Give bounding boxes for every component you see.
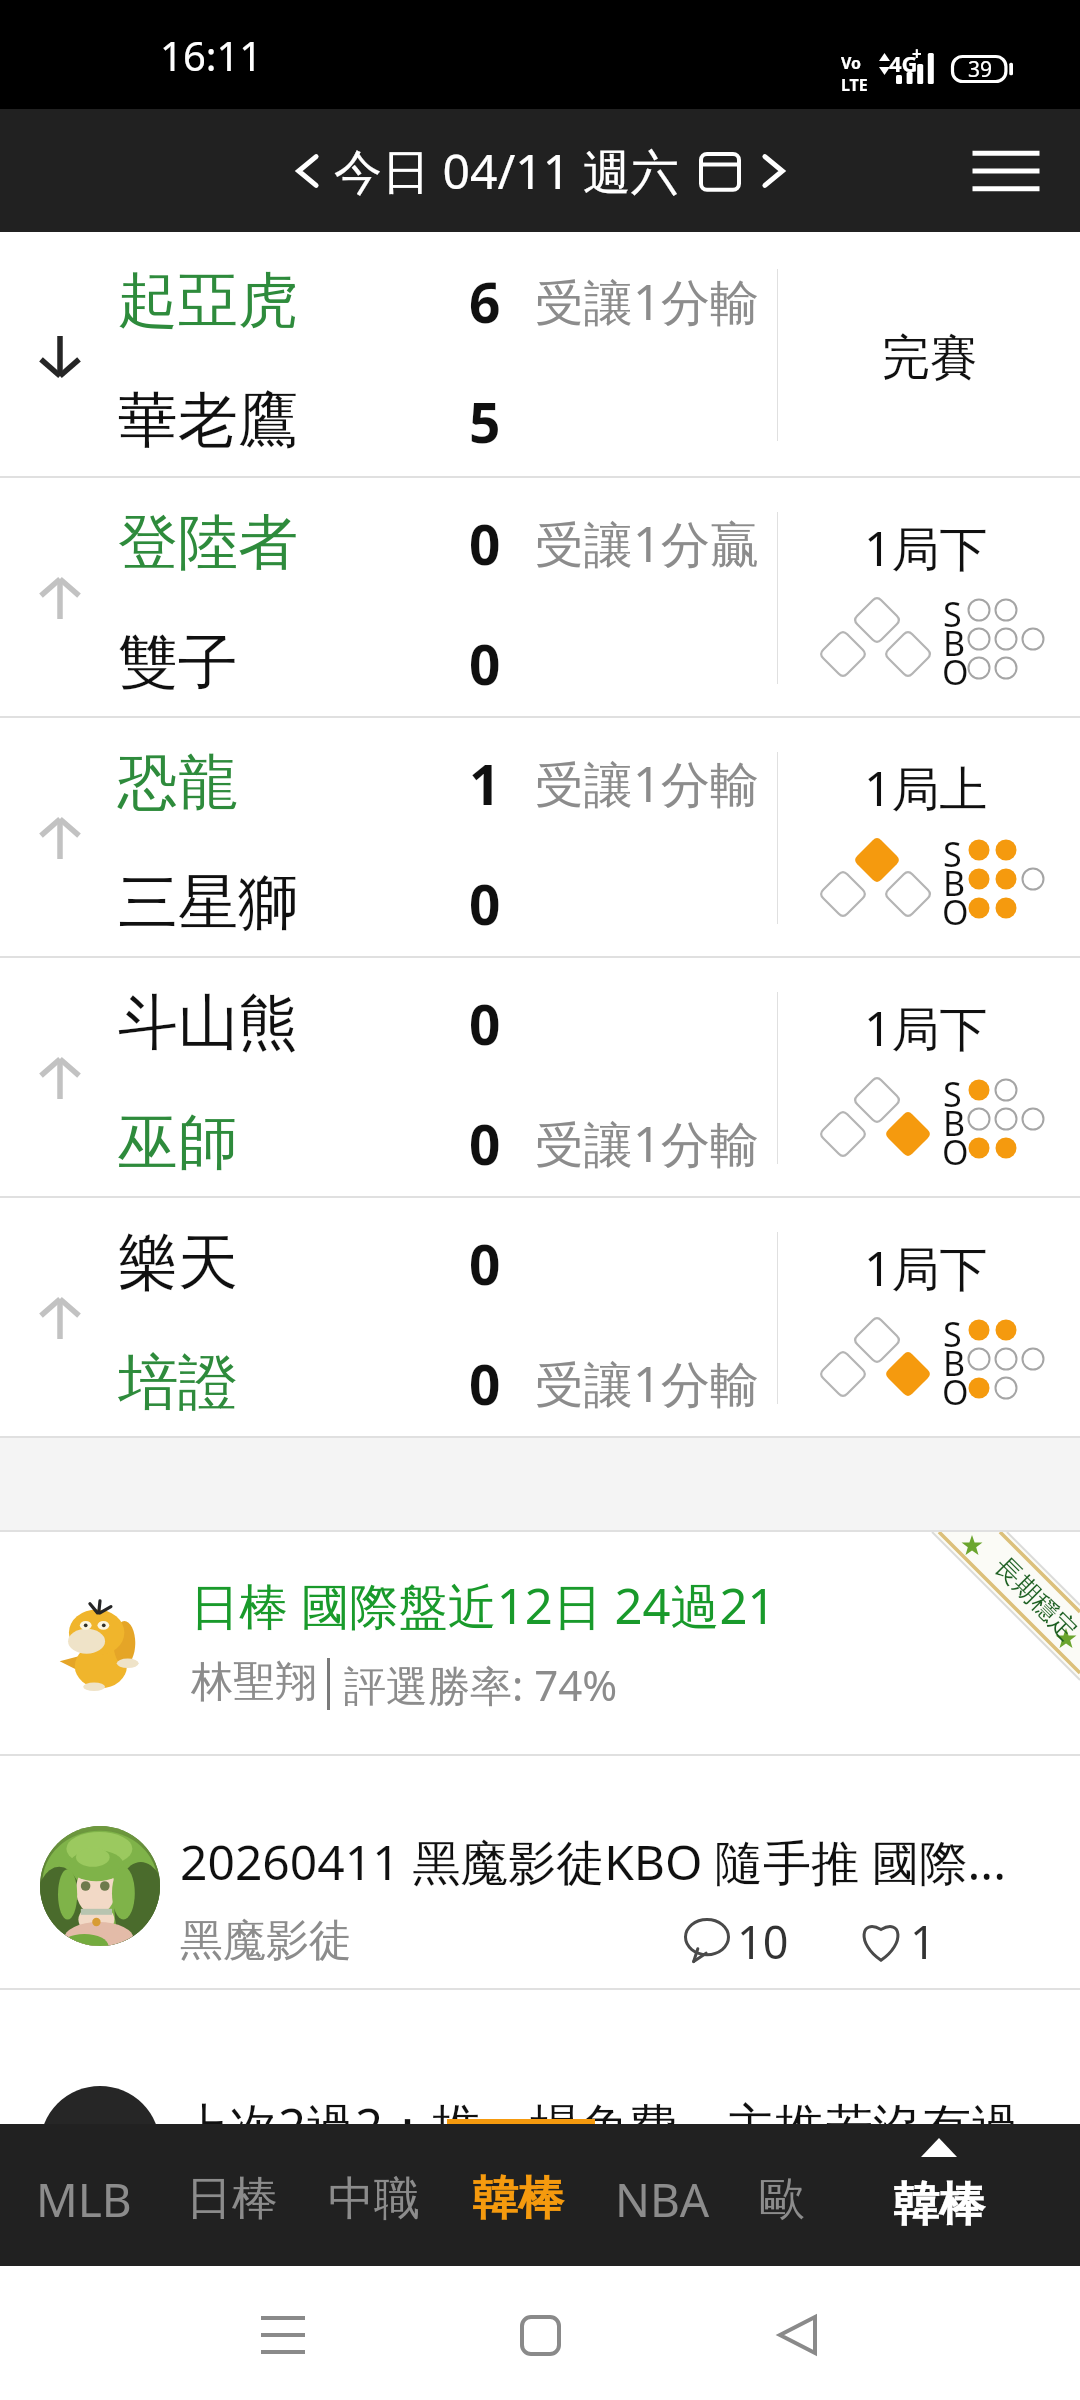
button[interactable]: Home	[493, 2288, 587, 2382]
staticText: 中職	[328, 2170, 420, 2228]
button[interactable]: 恐龍	[0, 718, 1080, 957]
staticText: B	[943, 1100, 966, 1146]
button[interactable]: 20260411 黑魔影徒KBO 隨手推 國際...	[0, 1756, 1080, 1989]
button[interactable]: Menu	[956, 121, 1056, 221]
staticText: 今日 04/11 週六	[334, 138, 679, 204]
staticText: 4G	[889, 48, 918, 78]
staticText: 日棒	[186, 2170, 278, 2228]
staticText: 1	[910, 1911, 936, 1972]
staticText: B	[943, 860, 966, 906]
staticText: 斗山熊	[118, 985, 298, 1061]
staticText: O	[942, 1369, 969, 1415]
staticText: 1	[469, 746, 501, 821]
staticText: B	[943, 620, 966, 666]
staticText: 20260411 黑魔影徒KBO 隨手推 國際...	[180, 1829, 1010, 1895]
staticText: O	[942, 649, 969, 695]
staticText: MLB	[36, 2168, 132, 2231]
button[interactable]: Back	[750, 2288, 844, 2382]
staticText: Vo	[841, 52, 862, 74]
button[interactable]: 今日 04/11 週六	[288, 138, 793, 204]
staticText: S	[943, 831, 962, 877]
staticText: 歐	[759, 2170, 805, 2228]
staticText: 樂天	[118, 1225, 238, 1301]
staticText: 日棒 國際盤近12日 24過21	[190, 1572, 776, 1639]
staticText: 華老鷹	[118, 383, 298, 459]
button[interactable]: 中職	[304, 2124, 444, 2266]
staticText: O	[942, 1129, 969, 1175]
staticText: 登陸者	[118, 505, 298, 581]
button[interactable]: 韓棒	[448, 2124, 588, 2266]
staticText: 林聖翔	[191, 1656, 317, 1709]
staticText: 黑魔影徒	[180, 1914, 352, 1968]
staticText: 10	[737, 1911, 789, 1972]
staticText: 0	[469, 866, 501, 941]
button[interactable]: 樂天	[0, 1198, 1080, 1437]
staticText: 0	[469, 626, 501, 701]
staticText: 恐龍	[118, 745, 238, 821]
staticText: 培證	[118, 1345, 238, 1421]
staticText: S	[943, 591, 962, 637]
staticText: 1局下	[864, 515, 988, 581]
button[interactable]: 日棒	[162, 2124, 302, 2266]
staticText: 5	[469, 384, 501, 459]
staticText: 起亞虎	[118, 263, 298, 339]
button[interactable]: 起亞虎	[0, 232, 1080, 477]
staticText: 0	[469, 986, 501, 1061]
staticText: 評選勝率: 74%	[344, 1656, 618, 1713]
staticText: 0	[469, 506, 501, 581]
staticText: 39	[968, 55, 993, 84]
button[interactable]: 上次2過2：推一場免費，主推若沒有過	[0, 1990, 1080, 2130]
staticText: 受讓1分輸	[535, 1350, 760, 1417]
staticText: 巫師	[118, 1105, 238, 1181]
staticText: O	[942, 889, 969, 935]
staticText: B	[943, 1340, 966, 1386]
button[interactable]: 登陸者	[0, 478, 1080, 717]
staticText: S	[943, 1071, 962, 1117]
staticText: 長期穩定	[988, 1550, 1080, 1647]
button[interactable]: 斗山熊	[0, 958, 1080, 1197]
button[interactable]: 韓棒	[858, 2124, 1020, 2266]
button[interactable]: NBA	[592, 2124, 732, 2266]
staticText: 韓棒	[472, 2170, 564, 2228]
staticText: 6	[469, 264, 501, 339]
staticText: 完賽	[882, 328, 978, 388]
staticText: 1局下	[864, 1235, 988, 1301]
staticText: 受讓1分贏	[535, 510, 760, 577]
staticText: 1局上	[864, 755, 988, 821]
staticText: 雙子	[118, 625, 238, 701]
staticText: 受讓1分輸	[535, 1110, 760, 1177]
button[interactable]: 日棒 國際盤近12日 24過21	[0, 1532, 1080, 1755]
button[interactable]: MLB	[14, 2124, 154, 2266]
staticText: 韓棒	[893, 2176, 985, 2234]
staticText: 0	[469, 1106, 501, 1181]
staticText: 16:11	[160, 28, 263, 82]
staticText: 1局下	[864, 995, 988, 1061]
staticText: LTE	[841, 74, 868, 96]
staticText: 受讓1分輸	[535, 268, 760, 335]
staticText: 0	[469, 1226, 501, 1301]
staticText: 三星獅	[118, 865, 298, 941]
staticText: 上次2過2：推一場免費，主推若沒有過	[180, 2092, 1021, 2159]
staticText: 受讓1分輸	[535, 750, 760, 817]
staticText: NBA	[615, 2168, 710, 2231]
staticText: +	[912, 42, 922, 65]
staticText: S	[943, 1311, 962, 1357]
button[interactable]: Recents	[236, 2288, 330, 2382]
button[interactable]: 歐	[712, 2124, 852, 2266]
staticText: 0	[469, 1346, 501, 1421]
